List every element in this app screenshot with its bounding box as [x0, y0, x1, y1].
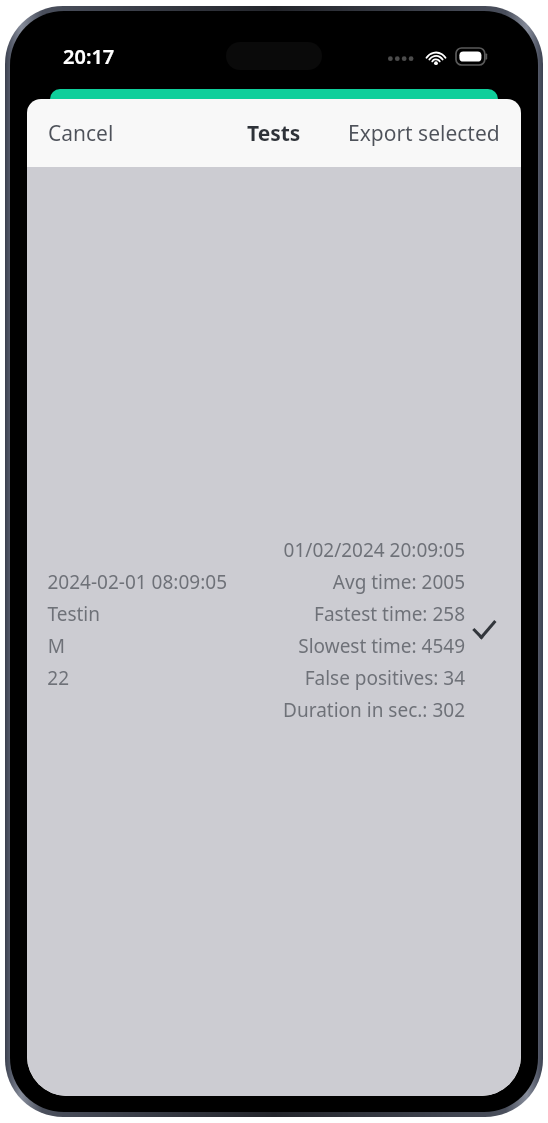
button[interactable]: 2024-02-01 08:09:05 [27, 167, 521, 1096]
staticText: Fastest time: 258 [314, 601, 465, 627]
staticText: 22 [47, 665, 69, 691]
button[interactable]: Export selected [327, 107, 521, 160]
staticText: 2024-02-01 08:09:05 [47, 569, 227, 595]
staticText: Testin [47, 601, 100, 627]
staticText: 20:17 [63, 43, 115, 70]
button[interactable]: Cancel [27, 107, 135, 160]
staticText: Slowest time: 4549 [298, 633, 465, 659]
staticText: Duration in sec.: 302 [283, 697, 465, 723]
staticText: 01/02/2024 20:09:05 [283, 537, 465, 563]
staticText: Avg time: 2005 [332, 569, 465, 595]
staticText: Cancel [48, 119, 114, 148]
staticText: Tests [247, 119, 301, 148]
staticText: False positives: 34 [304, 665, 465, 691]
other: Selected [471, 617, 497, 643]
staticText: M [47, 633, 65, 659]
staticText: Export selected [348, 119, 500, 148]
